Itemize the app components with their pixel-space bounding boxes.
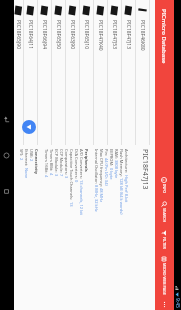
staticText: D/A Converters: — [74, 149, 79, 180]
staticText: 9:45 — [174, 298, 181, 308]
staticText: EEPROM: — [109, 149, 114, 168]
button[interactable]: PIC18F65J90 — [14, 0, 23, 145]
staticText: 2 — [29, 159, 34, 162]
staticText: Peripherals — [84, 149, 89, 172]
button[interactable]: PIC18F66J94 — [38, 0, 51, 145]
staticText: PIC18F47J13 — [140, 149, 150, 190]
staticText: Capacitive Touch Channels: — [69, 149, 74, 202]
staticText: CCP Module: — [59, 149, 64, 174]
staticText: Architecture: — [124, 149, 129, 175]
staticText: INFO — [162, 184, 167, 194]
button[interactable]: INFO — [155, 173, 174, 197]
button[interactable]: Back — [0, 101, 14, 137]
button[interactable]: FILTER — [155, 226, 174, 252]
staticText: PICmicro Database — [160, 9, 168, 64]
button[interactable]: SEARCH — [155, 197, 174, 226]
staticText: Timers 16Bit: — [44, 149, 49, 175]
staticText: 3 — [64, 176, 69, 179]
staticText: PIC18F65J10 — [83, 20, 90, 50]
staticText: PIC18F63J90 — [69, 20, 76, 50]
staticText: RAM: — [114, 149, 119, 160]
button[interactable]: PIC18F46K80 — [136, 0, 149, 145]
button[interactable]: Scroll to top — [22, 120, 36, 134]
staticText: PIC18F65J50 — [55, 20, 62, 50]
button[interactable]: PIC18F47J13 — [122, 0, 135, 145]
staticText: 128 kB (64 k words) — [119, 178, 124, 215]
staticText: PIC18F46K80 — [139, 20, 146, 51]
staticText: None — [24, 168, 29, 179]
staticText: 0 — [74, 180, 79, 183]
staticText: Ethernet: — [24, 149, 29, 168]
staticText: FILTER — [162, 237, 167, 249]
staticText: PIC18F64J11 — [27, 20, 34, 50]
staticText: 0 byte — [109, 168, 114, 180]
staticText: 8 MHz, 32 kHz — [94, 185, 99, 212]
staticText: 2 — [19, 158, 24, 161]
staticText: Comparators: — [64, 149, 69, 176]
staticText: Flash Memory: — [119, 149, 124, 178]
staticText: Timers 8Bit: — [49, 149, 54, 173]
staticText: 4 — [44, 175, 49, 178]
staticText: USB: — [29, 149, 34, 159]
staticText: 3808 byte — [114, 160, 119, 179]
staticText: Max CPU frequency: — [99, 149, 104, 188]
staticText: PIC18F47K40 — [97, 20, 104, 51]
staticText: 48 MHz — [99, 188, 104, 203]
staticText: A/D Converters: — [79, 149, 84, 180]
staticText: High Perf 8-bit — [124, 175, 129, 203]
staticText: Connectivity — [34, 149, 39, 175]
button[interactable]: Recent apps — [0, 173, 14, 209]
button[interactable]: PIC18F64J11 — [24, 0, 37, 145]
staticText: SEARCH — [162, 208, 167, 223]
staticText: 3 — [54, 174, 59, 177]
button[interactable]: PIC18F65J10 — [80, 0, 93, 145]
staticText: PIC18F47J13 — [125, 20, 132, 50]
staticText: 4 — [49, 173, 54, 176]
button[interactable]: MICRO WEB PAGE — [155, 252, 174, 298]
staticText: 13 channels, 12 bit — [79, 180, 84, 216]
button[interactable]: More options — [155, 298, 174, 310]
staticText: PIC18F65J90 — [15, 20, 22, 50]
staticText: SPI: — [19, 149, 24, 158]
staticText: Pin: — [104, 149, 109, 158]
button[interactable]: PIC18F47K40 — [94, 0, 107, 145]
button[interactable]: Home — [0, 137, 14, 173]
staticText: 13 — [69, 202, 74, 207]
staticText: PIC18F66J94 — [41, 20, 48, 50]
staticText: ECP Module: — [54, 149, 59, 174]
button[interactable]: PIC18F63J90 — [66, 0, 79, 145]
staticText: 7 — [59, 174, 64, 177]
staticText: PIC18F47J53 — [111, 20, 118, 50]
staticText: MICRO WEB PAGE — [162, 263, 167, 295]
button[interactable]: PIC18F47J53 — [108, 0, 121, 145]
staticText: 44 (Pin I/O: 34) — [104, 158, 109, 186]
button[interactable]: PIC18F65J50 — [52, 0, 65, 145]
staticText: Internal Oscillator: — [94, 149, 99, 185]
